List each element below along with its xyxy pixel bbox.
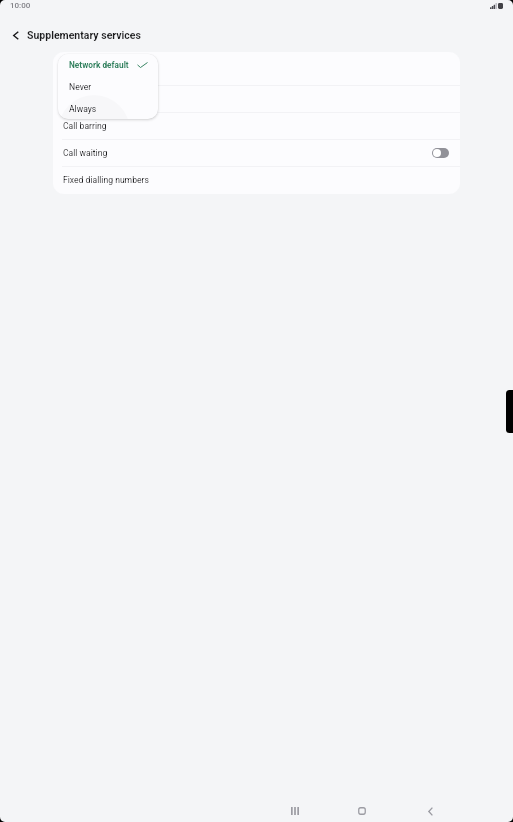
button[interactable]: Edge panel handle (506, 390, 513, 433)
staticText: Supplementary services (27, 29, 141, 41)
staticText: Call waiting (63, 148, 108, 158)
staticText: Call barring (63, 121, 107, 131)
button[interactable]: Call exclusion (53, 86, 460, 112)
staticText: Fixed dialling numbers (63, 175, 149, 185)
button[interactable]: Call forwarding (53, 59, 460, 85)
button[interactable]: Recent apps (275, 791, 315, 822)
staticText: Always (69, 104, 97, 114)
button[interactable]: Navigate up (4, 23, 28, 47)
staticText: Never (69, 82, 92, 92)
button[interactable]: Call barring (53, 113, 460, 139)
staticText: Network default (69, 60, 129, 70)
button[interactable]: Network default (58, 54, 158, 76)
staticText: Call forwarding (63, 67, 121, 77)
button[interactable]: Always (58, 98, 158, 119)
button[interactable]: Back (410, 791, 450, 822)
button[interactable]: Call waiting (53, 140, 460, 166)
button[interactable]: Home (342, 791, 382, 822)
button[interactable]: Call waiting toggle, off (432, 148, 449, 158)
staticText: 10:00 (10, 1, 31, 10)
button[interactable]: Never (58, 76, 158, 98)
button[interactable]: Fixed dialling numbers (53, 167, 460, 193)
